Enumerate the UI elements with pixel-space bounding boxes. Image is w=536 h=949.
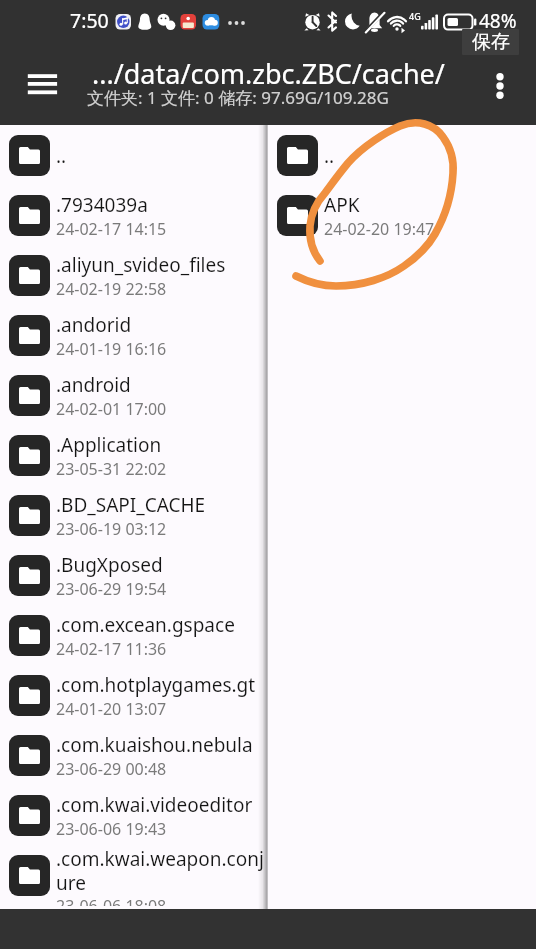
button[interactable]: .BugXposed <box>0 545 268 605</box>
button[interactable]: .Application <box>0 425 268 485</box>
staticText: APK <box>324 192 360 218</box>
staticText: 24-02-17 14:15 <box>56 218 167 240</box>
staticText: .Application <box>56 432 162 458</box>
staticText: .com.hotplaygames.gt <box>56 672 256 698</box>
button[interactable]: .BD_SAPI_CACHE <box>0 485 268 545</box>
staticText: .. <box>324 143 335 169</box>
button[interactable]: .com.hotplaygames.gt <box>0 665 268 725</box>
staticText: .aliyun_svideo_files <box>56 252 226 278</box>
button[interactable]: .7934039a <box>0 185 268 245</box>
staticText: .BD_SAPI_CACHE <box>56 492 206 518</box>
button[interactable]: .com.kuaishou.nebula <box>0 725 268 785</box>
staticText: .com.kuaishou.nebula <box>56 732 253 758</box>
button[interactable]: APK <box>268 185 536 245</box>
staticText: 保存 <box>472 30 510 54</box>
staticText: 24-01-20 13:07 <box>56 698 167 720</box>
staticText: .BugXposed <box>56 552 163 578</box>
staticText: 23-06-06 18:08 <box>56 895 167 906</box>
staticText: 23-05-31 22:02 <box>56 458 167 480</box>
staticText: .android <box>56 372 131 398</box>
staticText: 23-06-29 00:48 <box>56 758 167 780</box>
button[interactable]: .. <box>0 125 268 185</box>
button[interactable]: .aliyun_svideo_files <box>0 245 268 305</box>
staticText: 7:50 <box>70 7 109 34</box>
staticText: .com.kwai.videoeditor <box>56 792 253 818</box>
button[interactable]: .android <box>0 365 268 425</box>
button[interactable]: .com.excean.gspace <box>0 605 268 665</box>
staticText: 4G <box>409 10 421 22</box>
staticText: 24-02-01 17:00 <box>56 398 167 420</box>
staticText: 23-06-19 03:12 <box>56 518 167 540</box>
button[interactable]: .andorid <box>0 305 268 365</box>
staticText: .. <box>56 143 67 169</box>
staticText: 48% <box>479 8 517 34</box>
staticText: .../data/com.zbc.ZBC/cache/ <box>92 55 445 92</box>
button[interactable]: Menu <box>16 60 68 112</box>
staticText: .com.kwai.weapon.conjure <box>56 846 266 895</box>
staticText: .andorid <box>56 312 132 338</box>
staticText: 文件夹: 1 文件: 0 储存: 97.69G/109.28G <box>87 86 389 109</box>
staticText: 23-06-06 19:43 <box>56 818 167 840</box>
button[interactable]: Save <box>462 29 519 55</box>
staticText: .7934039a <box>56 192 148 218</box>
staticText: 24-02-20 19:47 <box>324 218 435 240</box>
button[interactable]: .com.kwai.videoeditor <box>0 785 268 845</box>
staticText: 24-02-19 22:58 <box>56 278 167 300</box>
button[interactable]: More options <box>478 64 522 108</box>
button[interactable]: .. <box>268 125 536 185</box>
staticText: 24-02-17 11:36 <box>56 638 167 660</box>
staticText: .com.excean.gspace <box>56 612 235 638</box>
staticText: 24-01-19 16:16 <box>56 338 167 360</box>
staticText: 23-06-29 19:54 <box>56 578 167 600</box>
button[interactable]: .com.kwai.weapon.conjure <box>0 845 268 905</box>
